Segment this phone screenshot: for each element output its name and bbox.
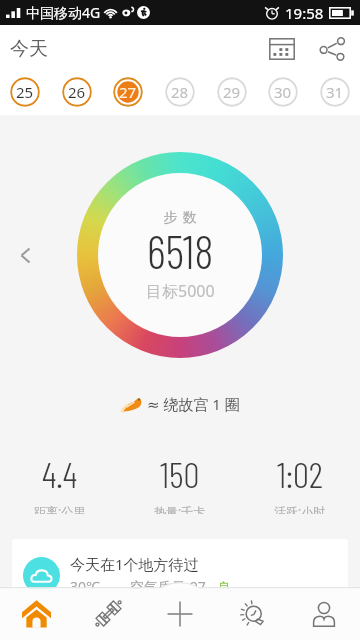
staticText: 150: [160, 452, 200, 495]
button[interactable]: Discover: [216, 587, 288, 640]
staticText: 27: [119, 82, 137, 102]
staticText: 4.4: [42, 452, 78, 495]
button[interactable]: Share: [310, 27, 354, 71]
button[interactable]: Previous day: [8, 238, 42, 272]
button[interactable]: 31: [320, 77, 350, 107]
button[interactable]: Add: [144, 587, 216, 640]
button[interactable]: Workout: [72, 587, 144, 640]
button[interactable]: 30: [268, 77, 298, 107]
staticText: 28: [171, 82, 189, 102]
staticText: 良: [218, 579, 231, 595]
staticText: 中国移动4G: [26, 3, 101, 22]
button[interactable]: 1:02: [240, 452, 360, 514]
button[interactable]: 今天在1个地方待过: [12, 539, 348, 611]
staticText: 步数: [161, 209, 199, 227]
button[interactable]: 28: [165, 77, 195, 107]
staticText: 30℃: [70, 577, 100, 596]
button[interactable]: 25: [10, 77, 40, 107]
button[interactable]: Calendar: [260, 27, 304, 71]
staticText: 空气质量 97: [130, 577, 206, 596]
staticText: 目标5000: [146, 280, 215, 302]
button[interactable]: 4.4: [0, 452, 120, 514]
staticText: 今天: [10, 37, 48, 61]
staticText: 热量:千卡: [154, 503, 206, 514]
staticText: 19:58: [285, 3, 324, 23]
staticText: 活跃:小时: [274, 503, 326, 514]
staticText: 25: [16, 82, 34, 102]
staticText: 距离:公里: [34, 503, 86, 514]
button[interactable]: 150: [120, 452, 240, 514]
button[interactable]: Home: [0, 587, 72, 640]
button[interactable]: 27: [113, 77, 143, 107]
staticText: 今天在1个地方待过: [70, 554, 199, 574]
staticText: 26: [68, 82, 86, 102]
staticText: 6518: [147, 223, 214, 278]
staticText: 30: [274, 82, 292, 102]
staticText: 29: [223, 82, 241, 102]
staticText: ≈ 绕故宫 1 圈: [147, 394, 240, 414]
staticText: 1:02: [277, 452, 323, 495]
button[interactable]: Profile: [288, 587, 360, 640]
button[interactable]: 26: [62, 77, 92, 107]
button[interactable]: 29: [217, 77, 247, 107]
staticText: 31: [326, 82, 344, 102]
